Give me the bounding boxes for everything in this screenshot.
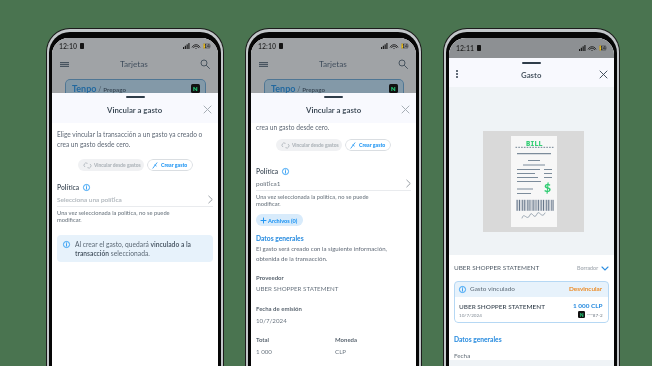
staticText: 10/7/2024 (256, 317, 287, 324)
staticText: UBER SHOPPER STATEMENT (454, 264, 540, 272)
staticText: Vincular a gasto (107, 105, 163, 114)
button[interactable]: Cerrar (599, 70, 608, 79)
staticText: ***87-2 (587, 312, 603, 318)
staticText: Vincular desde gastos (292, 142, 339, 148)
staticText: Gasto (521, 70, 542, 79)
button[interactable]: Más opciones (455, 69, 459, 79)
staticText: Tarjetas (319, 59, 347, 69)
staticText: Vincular a gasto (306, 105, 362, 114)
staticText: política1 (256, 180, 281, 188)
button[interactable]: Menu (257, 60, 270, 69)
staticText: Selecciona una política (57, 196, 122, 204)
staticText: Fecha de emisión (256, 305, 302, 312)
staticText: Gasto vinculado (470, 285, 515, 293)
staticText: Crear gasto (161, 162, 188, 168)
button[interactable]: Cerrar (203, 105, 212, 114)
staticText: 12:10 (59, 42, 78, 50)
staticText: Datos generales (256, 234, 304, 242)
staticText: 10/7/2024 (459, 312, 482, 318)
staticText: Desvincular (569, 285, 603, 293)
button[interactable]: Vincular desde gastos (78, 159, 144, 171)
staticText: Política (256, 167, 279, 175)
button[interactable]: Desvincular (569, 285, 603, 293)
button[interactable]: Cerrar (401, 105, 410, 114)
button[interactable]: Menu (58, 60, 71, 69)
staticText: UBER SHOPPER STATEMENT (256, 285, 339, 292)
staticText: Proveedor (256, 274, 284, 281)
staticText: Fecha (454, 352, 471, 360)
staticText: Elige vincular la transacción a un gasto… (57, 130, 213, 148)
staticText: N (193, 85, 198, 92)
staticText: Una vez seleccionada la política, no se … (57, 209, 175, 223)
staticText: Moneda (335, 336, 358, 343)
staticText: Archivos (0) (268, 217, 298, 224)
staticText: CLP (335, 348, 347, 355)
staticText: N (580, 312, 584, 318)
staticText: Tenpo / Prepago (72, 83, 126, 94)
staticText: Vincular desde gastos (94, 162, 141, 168)
button[interactable]: Crear gasto (345, 139, 391, 151)
staticText: Una vez seleccionada la política, no se … (256, 193, 374, 207)
staticText: Crear gasto (359, 142, 386, 148)
staticText: 14 (600, 45, 606, 51)
staticText: 1 000 CLP (573, 302, 603, 310)
staticText: Datos generales (454, 335, 502, 343)
staticText: 12:11 (456, 44, 475, 52)
staticText: Borrador (577, 265, 599, 271)
button[interactable]: Crear gasto (147, 159, 193, 171)
button[interactable]: política1 (256, 179, 411, 188)
staticText: Tarjetas (120, 59, 148, 69)
staticText: 1 000 (256, 348, 272, 355)
staticText: Política (57, 183, 80, 191)
button[interactable]: Vincular desde gastos (276, 139, 342, 151)
button[interactable]: Buscar (198, 57, 212, 71)
staticText: UBER SHOPPER STATEMENT (459, 303, 545, 311)
staticText: 14 (402, 43, 408, 49)
button[interactable]: Selecciona una política (57, 195, 213, 204)
button[interactable]: Archivos (0) (256, 214, 303, 226)
staticText: N (391, 85, 396, 92)
staticText: Al crear el gasto, quedará vinculado a l… (75, 240, 205, 257)
staticText: BILL (526, 139, 543, 149)
button[interactable]: Buscar (396, 57, 410, 71)
staticText: $ (544, 180, 551, 194)
staticText: crea un gasto desde cero. (256, 123, 330, 131)
staticText: Total (256, 336, 270, 343)
staticText: 14 (204, 43, 210, 49)
staticText: 12:10 (258, 42, 277, 50)
staticText: Tenpo / Prepago (271, 83, 325, 94)
staticText: El gasto será creado con la siguiente in… (256, 245, 411, 262)
